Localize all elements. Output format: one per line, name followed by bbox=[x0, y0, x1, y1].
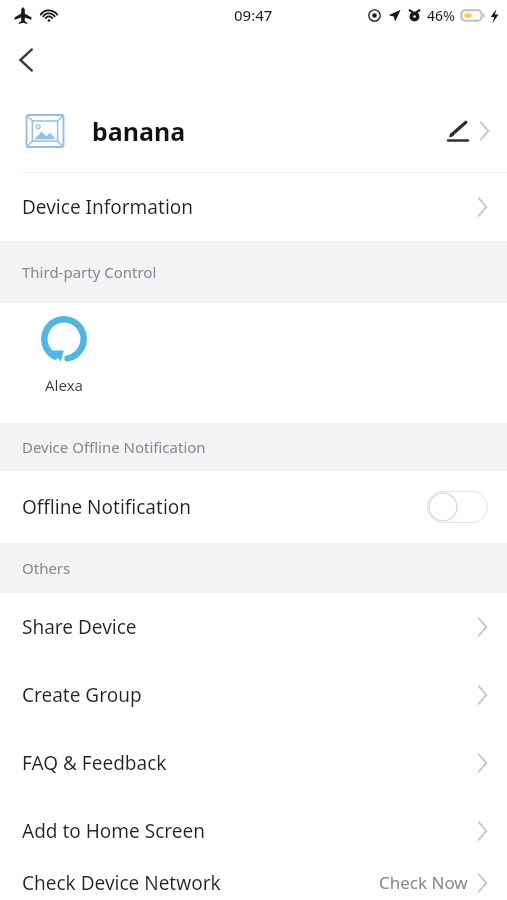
staticText: 46% bbox=[427, 6, 455, 25]
button[interactable]: Back bbox=[2, 36, 50, 84]
button[interactable]: Device Information bbox=[0, 173, 507, 241]
staticText: banana bbox=[92, 114, 186, 148]
button[interactable]: Rename device bbox=[440, 113, 476, 149]
staticText: Share Device bbox=[22, 614, 137, 640]
staticText: Create Group bbox=[22, 682, 142, 708]
button[interactable]: Share Device bbox=[0, 593, 507, 661]
staticText: Check Device Network bbox=[22, 870, 221, 896]
button[interactable]: Alexa bbox=[30, 315, 98, 395]
button[interactable]: Create Group bbox=[0, 661, 507, 729]
button[interactable]: banana bbox=[0, 90, 507, 172]
staticText: Others bbox=[22, 558, 71, 578]
button[interactable]: Offline Notification bbox=[0, 471, 507, 543]
staticText: 09:47 bbox=[234, 5, 273, 25]
button[interactable]: Check Device Network bbox=[0, 865, 507, 900]
staticText: Device Offline Notification bbox=[22, 437, 206, 457]
button[interactable]: Offline Notification toggle, off bbox=[427, 491, 488, 523]
button[interactable]: Add to Home Screen bbox=[0, 797, 507, 865]
staticText: Add to Home Screen bbox=[22, 818, 205, 844]
button[interactable]: FAQ & Feedback bbox=[0, 729, 507, 797]
staticText: Third-party Control bbox=[22, 262, 157, 282]
staticText: Check Now bbox=[379, 871, 468, 894]
staticText: Alexa bbox=[45, 375, 83, 395]
staticText: FAQ & Feedback bbox=[22, 750, 167, 776]
staticText: Offline Notification bbox=[22, 494, 192, 520]
staticText: Device Information bbox=[22, 194, 194, 220]
